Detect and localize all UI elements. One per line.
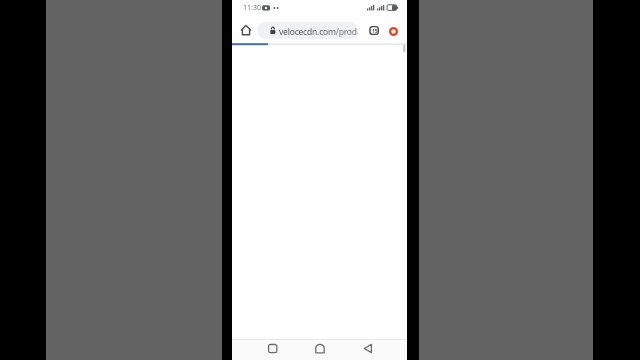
- staticText: 15: [372, 28, 378, 35]
- button[interactable]: [238, 22, 254, 38]
- button[interactable]: velocecdn.com/prod/n: [257, 22, 358, 39]
- button[interactable]: 15: [366, 23, 382, 39]
- button[interactable]: [310, 339, 330, 359]
- staticText: 11:30: [243, 3, 261, 13]
- button[interactable]: [389, 27, 398, 36]
- staticText: velocecdn.com/prod/n: [279, 26, 358, 38]
- button[interactable]: [358, 339, 378, 359]
- button[interactable]: [263, 339, 283, 359]
